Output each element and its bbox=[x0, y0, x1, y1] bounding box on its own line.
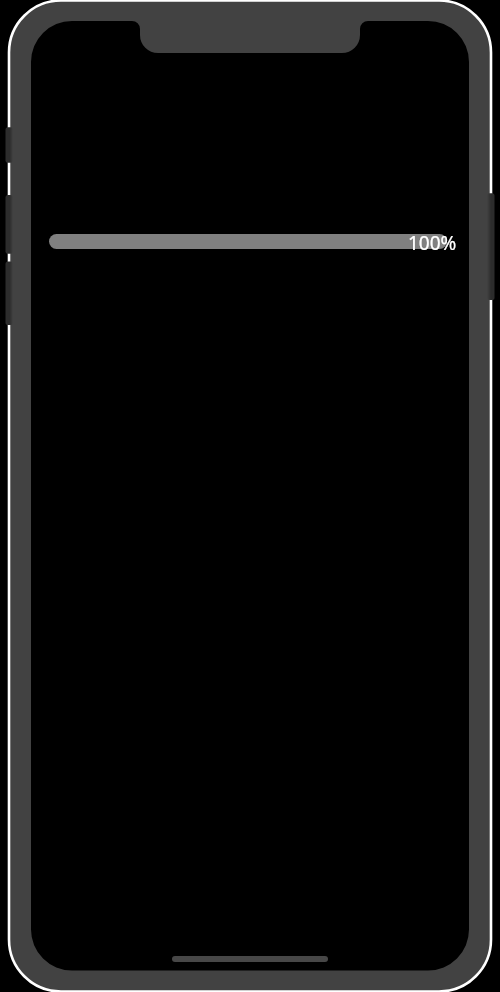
button[interactable]: Home bbox=[172, 956, 328, 962]
staticText: 100% bbox=[408, 230, 457, 256]
button[interactable]: Download progress, 100 percent bbox=[49, 234, 447, 249]
